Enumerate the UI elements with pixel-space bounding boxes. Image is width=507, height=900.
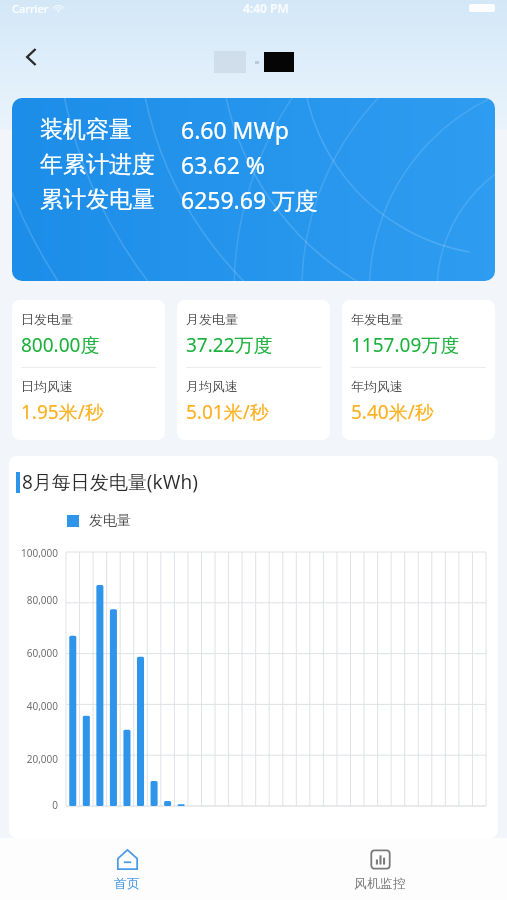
staticText: 60,000 [26,646,58,660]
button[interactable]: 月发电量 [177,300,330,440]
staticText: 4:40 PM [243,0,289,16]
button[interactable]: 年发电量 [342,300,495,440]
staticText: 1157.09万度 [351,332,460,358]
button[interactable]: 日发电量 [12,300,165,440]
staticText: 80,000 [26,593,58,607]
button[interactable]: 装机容量 [12,98,495,281]
staticText: 6.60 MWp [181,114,289,145]
staticText: Carrier [12,1,49,16]
staticText: 0 [52,798,58,812]
staticText: 累计发电量 [40,185,155,214]
staticText: 8月每日发电量(kWh) [22,469,198,495]
staticText: 风机监控 [354,875,406,891]
staticText: 日均风速 [21,378,73,394]
button[interactable]: 风机监控 [253,838,507,900]
staticText: 5.40米/秒 [351,399,434,425]
staticText: 年累计进度 [40,150,155,179]
staticText: 首页 [114,875,140,891]
staticText: 月均风速 [186,378,238,394]
staticText: 5.01米/秒 [186,399,269,425]
staticText: 日发电量 [21,311,73,327]
staticText: 年均风速 [351,378,403,394]
staticText: 37.22万度 [186,332,273,358]
staticText: 63.62 % [181,149,265,180]
staticText: 发电量 [89,512,131,530]
staticText: 40,000 [26,699,58,713]
staticText: 1.95米/秒 [21,399,104,425]
staticText: 100,000 [21,546,58,560]
staticText: 年发电量 [351,311,403,327]
staticText: 800.00度 [21,332,100,358]
staticText: 20,000 [26,752,58,766]
staticText: 装机容量 [40,115,132,144]
staticText: 6259.69 万度 [181,184,319,215]
button[interactable]: Back [10,35,54,79]
button[interactable]: 首页 [0,838,253,900]
staticText: 月发电量 [186,311,238,327]
